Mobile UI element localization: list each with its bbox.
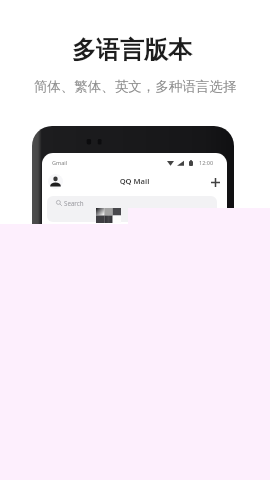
staticText: 12:00 xyxy=(199,159,214,166)
staticText: 简体、繁体、英文，多种语言选择 xyxy=(0,78,270,95)
button[interactable]: Compose xyxy=(208,175,222,189)
staticText: 多语言版本 xyxy=(0,35,267,65)
staticText: Search xyxy=(64,199,84,207)
staticText: Gmail xyxy=(52,159,68,166)
button[interactable]: Account xyxy=(48,174,63,189)
staticText: QQ Mail xyxy=(42,176,227,186)
button[interactable]: Search xyxy=(47,196,217,222)
